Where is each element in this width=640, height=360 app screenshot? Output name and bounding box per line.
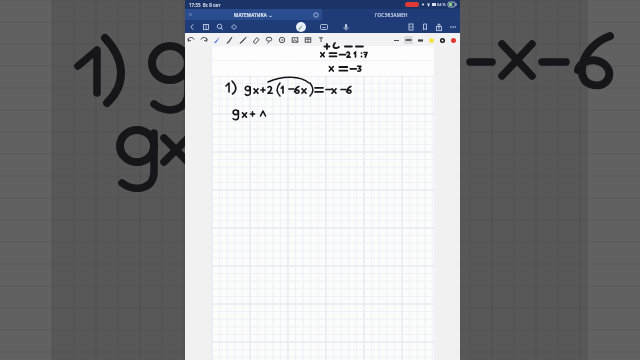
button[interactable]: New note [407, 23, 415, 31]
button[interactable]: Keyboard [320, 23, 328, 31]
button[interactable]: Redo [200, 36, 208, 44]
staticText: 17:35 Вс 8 окт [189, 2, 221, 8]
button[interactable]: Undo [187, 36, 195, 44]
button[interactable]: Colour swatch [428, 37, 435, 44]
staticText: 64 % [437, 2, 446, 7]
button[interactable] [212, 46, 433, 60]
button[interactable]: Medium stroke [404, 36, 413, 44]
button[interactable]: Pen [213, 36, 221, 44]
button[interactable]: Insert table [304, 36, 312, 44]
button[interactable]: Colour swatch [450, 37, 457, 44]
button[interactable]: Colour swatch [439, 37, 446, 44]
button[interactable]: Lasso [265, 36, 273, 44]
button[interactable]: Text tool [317, 36, 325, 44]
button[interactable]: Pages [202, 23, 210, 31]
button[interactable]: Bookmark [421, 23, 429, 31]
button[interactable]: Thin stroke [393, 37, 400, 44]
button[interactable]: Insert image [291, 36, 299, 44]
button[interactable]: Shapes [230, 23, 238, 31]
button[interactable]: Share [435, 23, 443, 31]
button[interactable]: Close tab [188, 12, 193, 17]
button[interactable]: МАТЕМАТИКА ⌄ [185, 9, 322, 20]
button[interactable]: More options [449, 23, 457, 31]
button[interactable]: Search [216, 23, 224, 31]
button[interactable]: Thick stroke [417, 37, 424, 44]
staticText: МАТЕМАТИКА ⌄ [234, 12, 273, 18]
button[interactable] [212, 61, 433, 76]
staticText: ГОСЭКЗАМЕН [375, 12, 408, 18]
button[interactable]: Back [188, 23, 196, 31]
button[interactable]: Pencil [226, 36, 234, 44]
button[interactable]: Pen mode [296, 22, 306, 32]
button[interactable]: New tab [313, 12, 319, 18]
button[interactable]: Shape tool [278, 36, 286, 44]
button[interactable]: Microphone [342, 23, 350, 31]
button[interactable]: Eraser [252, 36, 260, 44]
button[interactable]: ГОСЭКЗАМЕН [322, 9, 460, 20]
button[interactable]: Highlighter [239, 36, 247, 44]
